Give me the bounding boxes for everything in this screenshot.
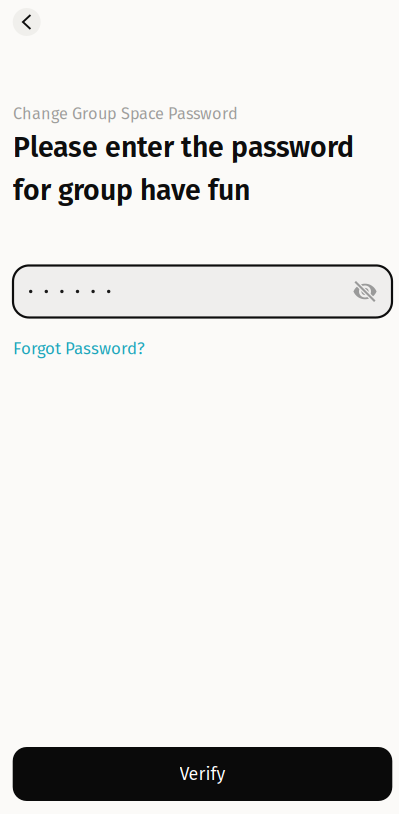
button[interactable]: Verify: [13, 747, 392, 801]
button[interactable]: Back: [13, 8, 41, 36]
staticText: Verify: [179, 763, 225, 785]
button[interactable]: Show password: [350, 276, 380, 306]
staticText: for group have fun: [13, 173, 250, 207]
button[interactable]: Forgot Password?: [0, 338, 145, 359]
staticText: Forgot Password?: [13, 338, 145, 359]
staticText: Please enter the password: [13, 130, 354, 165]
staticText: Change Group Space Password: [13, 104, 238, 123]
